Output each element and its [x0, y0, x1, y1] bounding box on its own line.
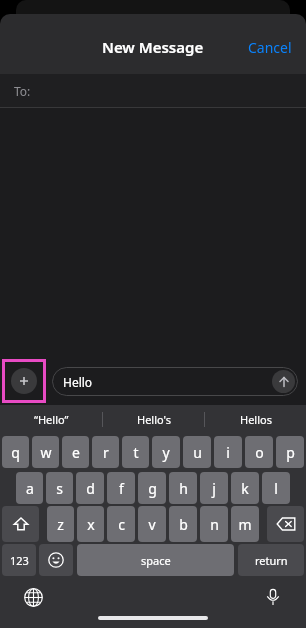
button[interactable]: k	[231, 472, 259, 504]
staticText: “Hello”	[34, 412, 69, 427]
staticText: m	[238, 515, 252, 534]
staticText: q	[11, 443, 20, 462]
button[interactable]: x	[77, 506, 104, 542]
staticText: e	[72, 443, 80, 462]
button[interactable]: i	[214, 436, 242, 468]
button[interactable]: q	[2, 436, 29, 468]
button[interactable]: space	[77, 544, 234, 576]
staticText: k	[241, 479, 249, 498]
staticText: o	[255, 443, 264, 462]
button[interactable]: c	[107, 506, 135, 542]
button[interactable]: r	[92, 436, 119, 468]
button[interactable]: m	[231, 506, 259, 542]
staticText: New Message	[102, 37, 204, 57]
button[interactable]: y	[152, 436, 180, 468]
staticText: g	[148, 479, 157, 498]
button[interactable]: Shift	[2, 506, 39, 542]
staticText: d	[86, 479, 95, 498]
staticText: To:	[14, 83, 31, 99]
button[interactable]: Hellos	[205, 405, 306, 434]
staticText: x	[87, 515, 95, 534]
button[interactable]: Send	[272, 370, 295, 393]
staticText: y	[162, 443, 170, 462]
button[interactable]: 123	[2, 544, 36, 576]
staticText: h	[179, 479, 188, 498]
staticText: Hello	[63, 374, 93, 390]
button[interactable]: Cancel	[234, 32, 306, 63]
button[interactable]: Change keyboard	[18, 582, 48, 612]
button[interactable]: Hello	[52, 367, 298, 396]
button[interactable]: a	[16, 472, 43, 504]
button[interactable]: o	[245, 436, 273, 468]
staticText: a	[26, 479, 34, 498]
button[interactable]: Dictate	[258, 582, 288, 612]
staticText: c	[118, 515, 125, 534]
button[interactable]: t	[122, 436, 149, 468]
staticText: n	[210, 515, 219, 534]
button[interactable]: g	[138, 472, 166, 504]
staticText: z	[57, 515, 64, 534]
button[interactable]: f	[107, 472, 135, 504]
staticText: s	[56, 479, 63, 498]
staticText: Cancel	[248, 38, 292, 57]
button[interactable]: n	[200, 506, 228, 542]
staticText: l	[274, 479, 278, 498]
button[interactable]: j	[200, 472, 228, 504]
button[interactable]: l	[262, 472, 290, 504]
button[interactable]: u	[183, 436, 211, 468]
staticText: f	[119, 479, 124, 498]
staticText: t	[133, 443, 139, 462]
button[interactable]: “Hello”	[0, 405, 102, 434]
button[interactable]: s	[46, 472, 73, 504]
button[interactable]: return	[238, 544, 304, 576]
button[interactable]: e	[62, 436, 89, 468]
staticText: j	[212, 479, 216, 498]
staticText: r	[103, 443, 109, 462]
staticText: Hello's	[137, 412, 171, 427]
button[interactable]: d	[76, 472, 104, 504]
button[interactable]: To:	[0, 74, 306, 107]
button[interactable]: Add attachment	[2, 359, 46, 403]
staticText: b	[179, 515, 188, 534]
staticText: space	[141, 553, 171, 568]
button[interactable]: v	[138, 506, 166, 542]
staticText: p	[286, 443, 295, 462]
button[interactable]: p	[276, 436, 304, 468]
button[interactable]: z	[47, 506, 74, 542]
staticText: v	[148, 515, 156, 534]
staticText: w	[40, 443, 52, 462]
staticText: 123	[10, 553, 29, 568]
staticText: i	[226, 443, 230, 462]
button[interactable]: Emoji	[39, 544, 73, 576]
button[interactable]: w	[32, 436, 59, 468]
staticText: Hellos	[240, 412, 272, 427]
staticText: return	[255, 553, 288, 568]
button[interactable]: h	[169, 472, 197, 504]
staticText: u	[193, 443, 202, 462]
button[interactable]: Hello's	[103, 405, 204, 434]
button[interactable]: b	[169, 506, 197, 542]
button[interactable]: Backspace	[267, 506, 304, 542]
